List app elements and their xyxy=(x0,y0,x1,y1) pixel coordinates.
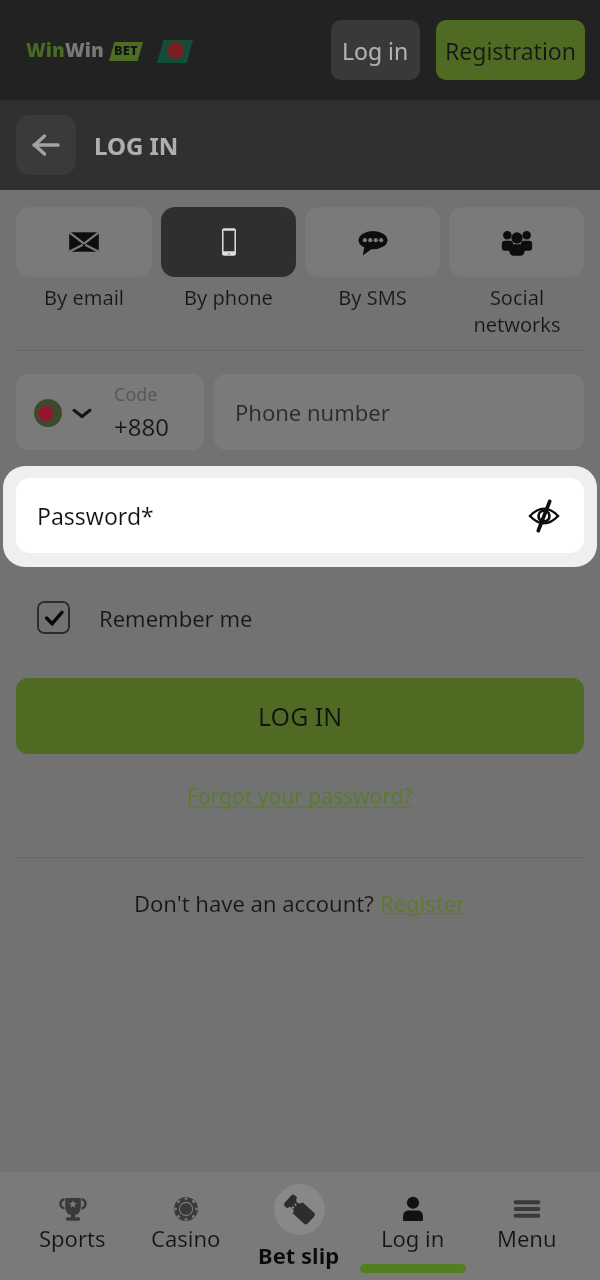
staticText: Registration xyxy=(445,35,576,66)
staticText: BET xyxy=(114,41,138,59)
button[interactable]: Log in xyxy=(356,1172,470,1273)
staticText: Sports xyxy=(39,1223,106,1253)
staticText: Log in xyxy=(381,1223,445,1253)
staticText: Menu xyxy=(497,1223,557,1253)
button[interactable]: Casino xyxy=(129,1172,242,1253)
button[interactable]: Back xyxy=(16,115,76,175)
staticText: Log in xyxy=(342,35,409,66)
button[interactable]: Forgot your password? xyxy=(187,782,413,811)
staticText: Bet slip xyxy=(258,1240,340,1270)
staticText: Win xyxy=(65,37,104,63)
staticText: Casino xyxy=(151,1223,221,1253)
staticText: Remember me xyxy=(99,603,253,633)
button[interactable]: By email xyxy=(16,207,152,311)
button[interactable]: Registration xyxy=(436,20,585,80)
button[interactable]: Social networks xyxy=(449,207,584,338)
button[interactable]: Menu xyxy=(470,1172,584,1253)
staticText: By email xyxy=(44,284,124,311)
button[interactable]: Bet slip xyxy=(242,1172,356,1270)
button[interactable]: By phone xyxy=(161,207,296,311)
staticText: +880 xyxy=(114,410,169,443)
staticText: Social networks xyxy=(473,284,561,338)
button[interactable]: Register xyxy=(380,888,466,918)
button[interactable]: Show password xyxy=(522,494,566,538)
button[interactable]: LOG IN xyxy=(16,678,584,754)
staticText: Phone number xyxy=(235,397,390,427)
staticText: Don't have an account? xyxy=(134,888,380,918)
button[interactable]: Log in xyxy=(331,20,420,80)
button[interactable]: Sports xyxy=(16,1172,129,1253)
button[interactable]: Phone number xyxy=(214,374,584,450)
staticText: Code xyxy=(114,382,158,407)
staticText: LOG IN xyxy=(94,129,179,162)
staticText: Password* xyxy=(37,500,154,531)
staticText: By SMS xyxy=(338,284,407,311)
button[interactable]: Password* xyxy=(16,478,584,553)
staticText: LOG IN xyxy=(258,699,343,733)
staticText: By phone xyxy=(184,284,273,311)
staticText: Win xyxy=(26,37,65,63)
button[interactable]: Code xyxy=(16,374,204,450)
button[interactable]: Remember me xyxy=(37,601,253,634)
button[interactable]: By SMS xyxy=(305,207,440,311)
